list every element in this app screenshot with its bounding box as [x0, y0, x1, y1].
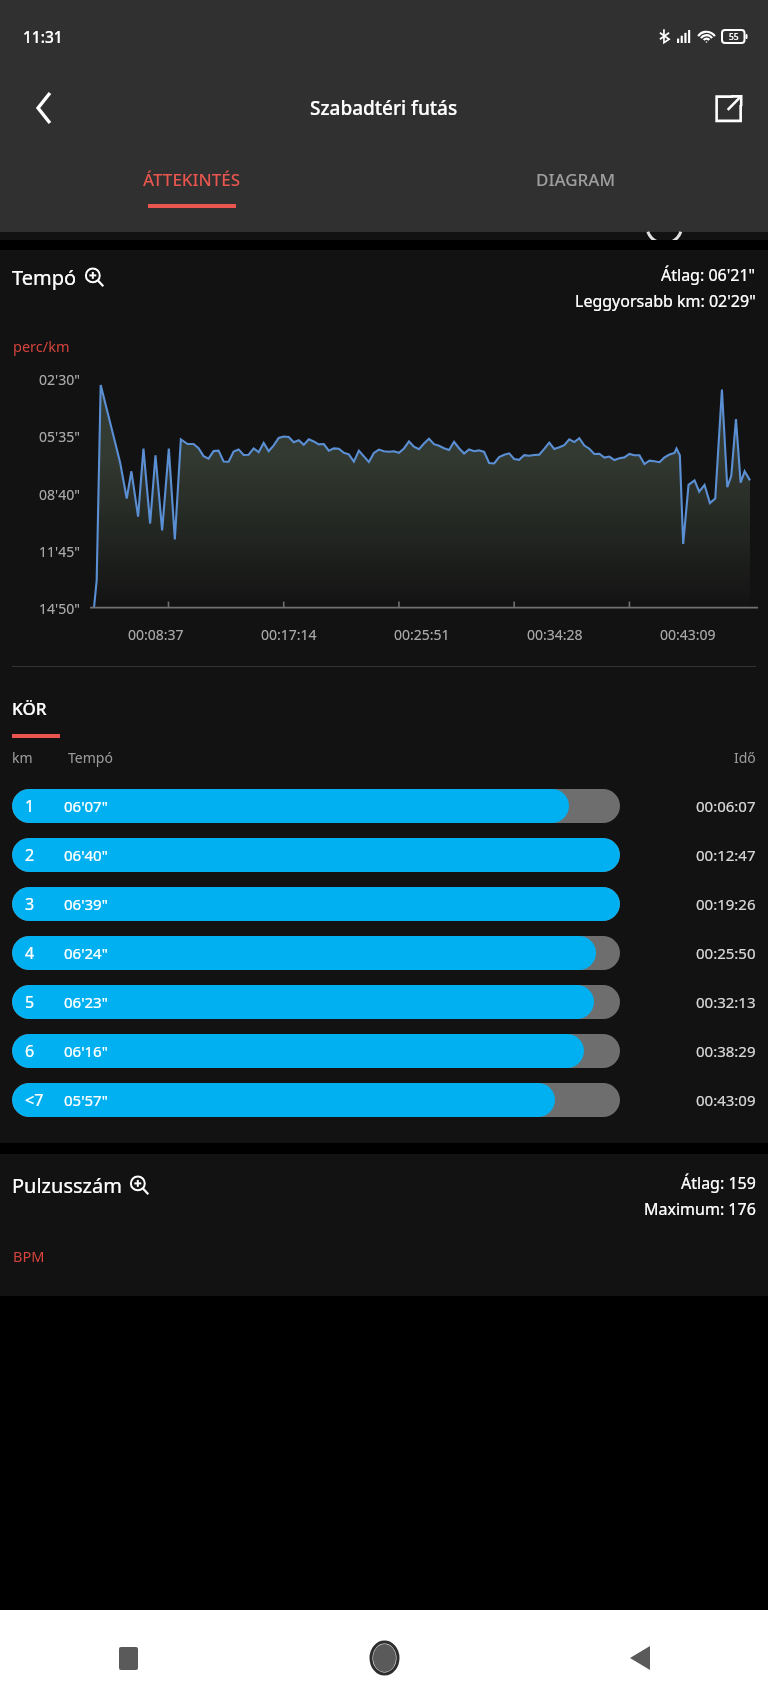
staticText: 00:19:26	[696, 894, 756, 914]
staticText: BPM	[13, 1246, 45, 1266]
button[interactable]: Share	[700, 80, 756, 136]
staticText: 00:38:29	[696, 1041, 756, 1061]
staticText: Átlag: 159	[681, 1172, 756, 1194]
button[interactable]: 3	[0, 887, 768, 921]
staticText: 00:43:09	[660, 625, 716, 644]
staticText: Szabadtéri futás	[310, 95, 458, 121]
staticText: 00:17:14	[261, 625, 317, 644]
staticText: 05'57"	[64, 1090, 108, 1110]
staticText: 00:08:37	[128, 625, 184, 644]
staticText: perc/km	[13, 336, 70, 356]
staticText: <7	[25, 1089, 44, 1111]
staticText: 02'30"	[39, 370, 80, 389]
staticText: Leggyorsabb km: 02'29"	[575, 290, 756, 312]
staticText: 11:31	[23, 26, 63, 47]
button[interactable]: ÁTTEKINTÉS	[0, 144, 384, 232]
staticText: 00:32:13	[696, 992, 756, 1012]
staticText: 1	[25, 795, 35, 817]
staticText: km	[12, 748, 68, 767]
staticText: 3	[25, 893, 35, 915]
staticText: 00:25:51	[394, 625, 450, 644]
staticText: 00:25:50	[696, 943, 756, 963]
button[interactable]: Home	[256, 1610, 512, 1706]
staticText: 6	[25, 1040, 35, 1062]
staticText: 05'35"	[39, 427, 80, 446]
staticText: Maximum: 176	[644, 1198, 756, 1220]
staticText: Tempó	[68, 748, 113, 767]
staticText: 06'16"	[64, 1041, 108, 1061]
button[interactable]: Recent apps	[0, 1610, 256, 1706]
staticText: 06'40"	[64, 845, 108, 865]
staticText: 14'50"	[39, 599, 80, 618]
button[interactable]: 2	[0, 838, 768, 872]
staticText: Idő	[734, 748, 756, 767]
staticText: 00:43:09	[696, 1090, 756, 1110]
button[interactable]: Back	[512, 1610, 768, 1706]
button[interactable]: DIAGRAM	[384, 144, 768, 232]
button[interactable]: Pulzusszám	[12, 1172, 150, 1199]
button[interactable]: 1	[0, 789, 768, 823]
staticText: 00:06:07	[696, 796, 756, 816]
button[interactable]: Tempó	[12, 264, 105, 291]
staticText: ÁTTEKINTÉS	[143, 168, 241, 191]
staticText: 11'45"	[39, 542, 80, 561]
staticText: Átlag: 06'21"	[661, 264, 756, 286]
staticText: 4	[25, 942, 35, 964]
staticText: 06'39"	[64, 894, 108, 914]
staticText: 00:34:28	[527, 625, 583, 644]
staticText: KÖR	[12, 697, 47, 720]
button[interactable]: 4	[0, 936, 768, 970]
staticText: 06'24"	[64, 943, 108, 963]
staticText: Tempó	[12, 264, 77, 291]
button[interactable]: 6	[0, 1034, 768, 1068]
staticText: 55	[729, 31, 739, 43]
staticText: 5	[25, 991, 35, 1013]
staticText: 06'07"	[64, 796, 108, 816]
button[interactable]: <7	[0, 1083, 768, 1117]
staticText: DIAGRAM	[536, 168, 616, 191]
staticText: 00:12:47	[696, 845, 756, 865]
staticText: 2	[25, 844, 35, 866]
button[interactable]: Back	[16, 80, 72, 136]
staticText: 06'23"	[64, 992, 108, 1012]
button[interactable]: 5	[0, 985, 768, 1019]
staticText: Pulzusszám	[12, 1172, 122, 1199]
staticText: 08'40"	[39, 485, 80, 504]
